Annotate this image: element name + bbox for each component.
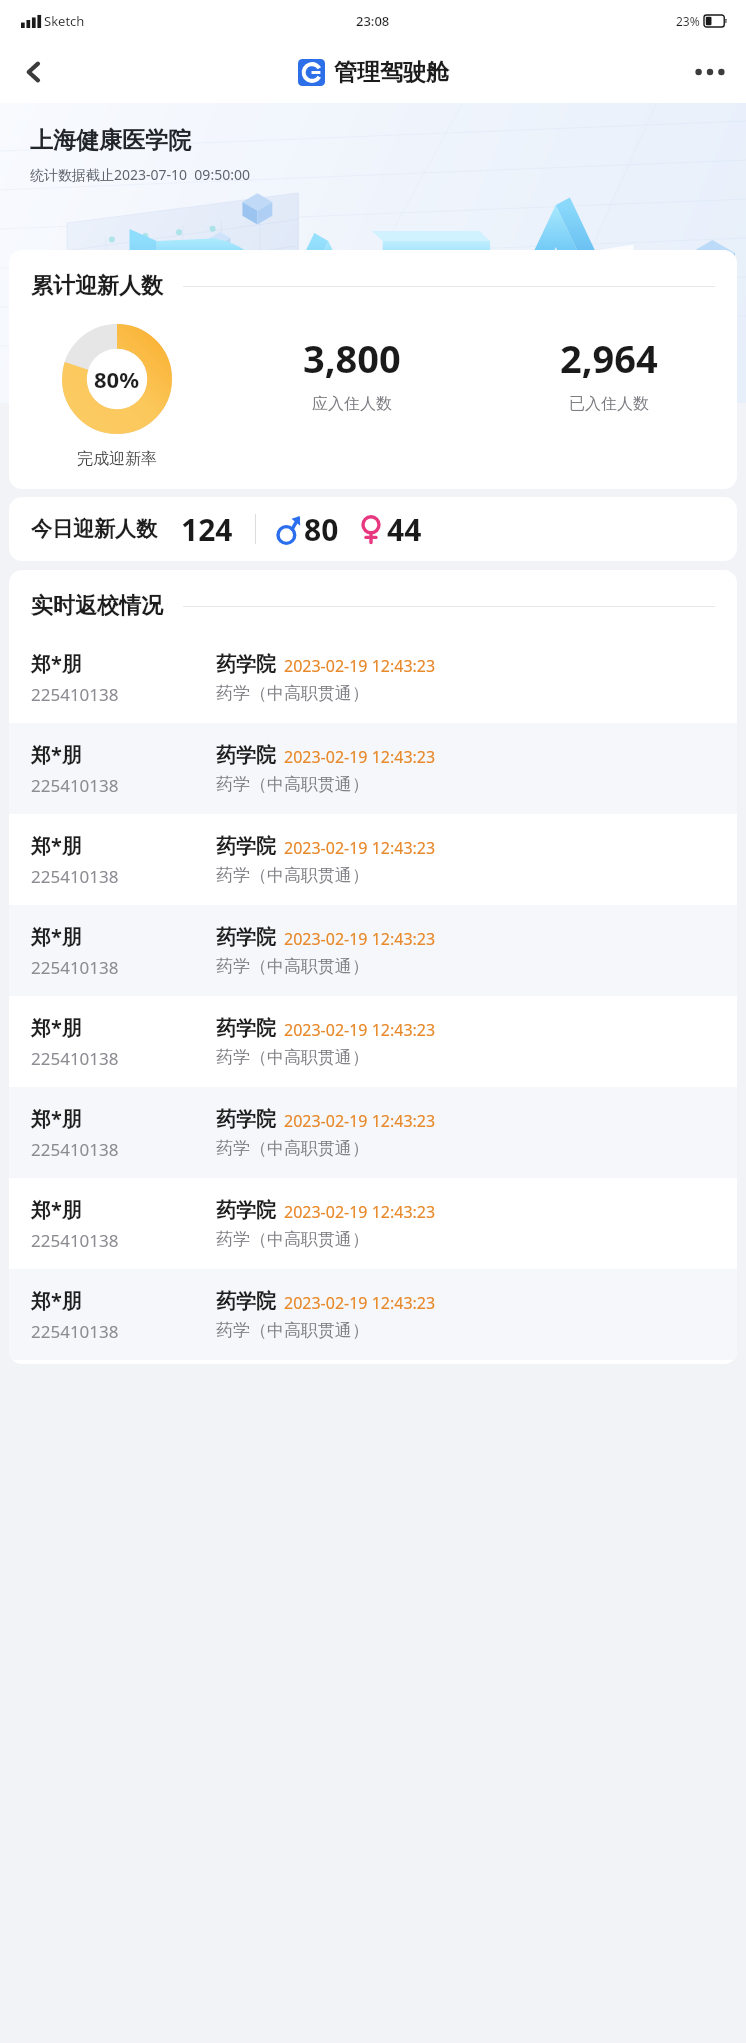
- staticText: 药学院: [216, 743, 276, 768]
- button[interactable]: 郑*朋: [9, 723, 737, 814]
- staticText: 3,800: [303, 332, 401, 384]
- staticText: 药学（中高职贯通）: [216, 1229, 369, 1250]
- staticText: 药学（中高职贯通）: [216, 865, 369, 886]
- staticText: 郑*朋: [31, 832, 82, 859]
- staticText: 药学院: [216, 1016, 276, 1041]
- button[interactable]: 郑*朋: [9, 1178, 737, 1269]
- staticText: 郑*朋: [31, 1105, 82, 1132]
- staticText: 药学（中高职贯通）: [216, 956, 369, 977]
- staticText: 225410138: [31, 774, 119, 797]
- button[interactable]: 郑*朋: [9, 1269, 737, 1360]
- staticText: 药学（中高职贯通）: [216, 1138, 369, 1159]
- staticText: 完成迎新率: [77, 449, 157, 469]
- button[interactable]: Back: [10, 48, 58, 96]
- staticText: 2023-02-19 12:43:23: [284, 1110, 436, 1132]
- staticText: 药学院: [216, 925, 276, 950]
- staticText: 225410138: [31, 683, 119, 706]
- staticText: 2023-02-19 12:43:23: [284, 1019, 436, 1041]
- staticText: 225410138: [31, 865, 119, 888]
- button[interactable]: 郑*朋: [9, 996, 737, 1087]
- staticText: 2023-02-19 12:43:23: [284, 1201, 436, 1223]
- staticText: 2023-02-19 12:43:23: [284, 655, 436, 677]
- staticText: 药学（中高职贯通）: [216, 1320, 369, 1341]
- staticText: 药学（中高职贯通）: [216, 683, 369, 704]
- staticText: 累计迎新人数: [31, 272, 163, 300]
- staticText: 2,964: [560, 332, 658, 384]
- button[interactable]: More options: [682, 44, 738, 100]
- staticText: 23%: [676, 13, 700, 29]
- staticText: 药学（中高职贯通）: [216, 1047, 369, 1068]
- button[interactable]: 郑*朋: [9, 1087, 737, 1178]
- staticText: 药学（中高职贯通）: [216, 774, 369, 795]
- button[interactable]: 郑*朋: [9, 632, 737, 723]
- staticText: 药学院: [216, 652, 276, 677]
- staticText: 管理驾驶舱: [334, 58, 449, 87]
- staticText: 225410138: [31, 1138, 119, 1161]
- staticText: 2023-02-19 12:43:23: [284, 1292, 436, 1314]
- staticText: 郑*朋: [31, 1196, 82, 1223]
- staticText: 今日迎新人数: [31, 516, 157, 542]
- staticText: 23:08: [356, 12, 390, 30]
- button[interactable]: 今日迎新人数: [9, 497, 737, 561]
- staticText: 郑*朋: [31, 1287, 82, 1314]
- staticText: 80%: [94, 364, 140, 394]
- staticText: 2023-02-19 12:43:23: [284, 746, 436, 768]
- staticText: 郑*朋: [31, 741, 82, 768]
- staticText: 郑*朋: [31, 650, 82, 677]
- staticText: 药学院: [216, 834, 276, 859]
- staticText: 225410138: [31, 1229, 119, 1252]
- staticText: 已入住人数: [569, 394, 649, 414]
- staticText: 124: [181, 509, 233, 550]
- staticText: 药学院: [216, 1107, 276, 1132]
- button[interactable]: 郑*朋: [9, 905, 737, 996]
- button[interactable]: 累计迎新人数: [9, 250, 737, 489]
- staticText: 药学院: [216, 1289, 276, 1314]
- staticText: 郑*朋: [31, 1014, 82, 1041]
- staticText: 225410138: [31, 1047, 119, 1070]
- staticText: 2023-02-19 12:43:23: [284, 928, 436, 950]
- staticText: 80: [304, 509, 339, 550]
- staticText: 实时返校情况: [31, 592, 163, 620]
- staticText: 药学院: [216, 1198, 276, 1223]
- staticText: 225410138: [31, 1320, 119, 1343]
- button[interactable]: 郑*朋: [9, 814, 737, 905]
- staticText: 44: [387, 509, 422, 550]
- staticText: 225410138: [31, 956, 119, 979]
- staticText: Sketch: [44, 12, 85, 30]
- staticText: 统计数据截止2023-07-10 09:50:00: [30, 165, 250, 184]
- staticText: 2023-02-19 12:43:23: [284, 837, 436, 859]
- staticText: 应入住人数: [312, 394, 392, 414]
- staticText: 郑*朋: [31, 923, 82, 950]
- staticText: 上海健康医学院: [30, 126, 191, 155]
